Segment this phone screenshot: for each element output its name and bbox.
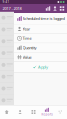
staticText: Quantity [22,45,36,50]
button[interactable] [13,105,27,119]
staticText: Year [22,26,30,31]
button[interactable]: Time [14,34,67,43]
staticText: Value [22,54,31,60]
button[interactable]: Year [14,24,67,33]
button[interactable] [27,105,40,119]
staticText: Time [22,36,31,41]
button[interactable]: Grid [58,4,65,13]
button[interactable]: Reports [40,105,54,119]
button[interactable]: Chart [44,4,51,13]
button[interactable]: Apply [14,62,67,72]
staticText: Scheduled time is logged [22,16,64,21]
staticText: 9:41 [2,0,9,4]
button[interactable]: People [51,4,58,13]
staticText: Reports [41,113,52,116]
button[interactable]: Value [14,53,67,62]
staticText: Apply [38,64,48,70]
button[interactable] [54,105,67,119]
button[interactable] [0,105,13,119]
staticText: 2017 - 2018 [2,6,21,11]
button[interactable]: Quantity [14,43,67,52]
